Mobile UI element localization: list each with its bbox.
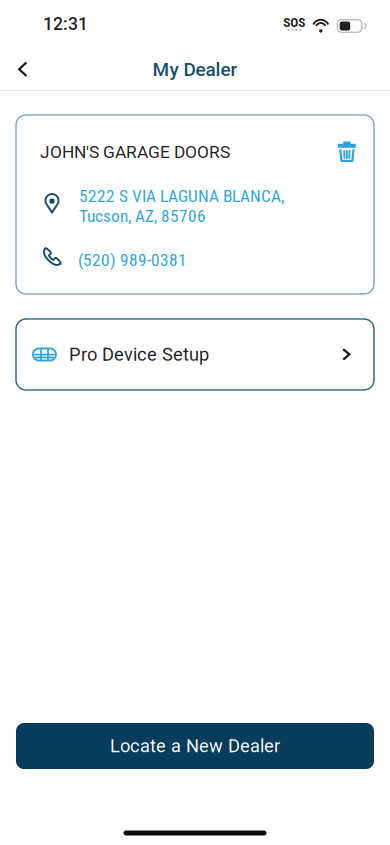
staticText: Pro Device Setup — [69, 344, 209, 365]
button[interactable]: Back — [0, 48, 46, 91]
staticText: Tucson, AZ, 85706 — [79, 206, 206, 226]
staticText: 12:31 — [43, 14, 88, 34]
button[interactable]: Locate a New Dealer — [16, 723, 374, 769]
staticText: JOHN'S GARAGE DOORS — [40, 142, 230, 162]
button[interactable]: (520) 989-0381 — [40, 249, 356, 271]
staticText: (520) 989-0381 — [78, 250, 187, 270]
staticText: 5222 S VIA LAGUNA BLANCA, — [79, 186, 284, 206]
button[interactable]: Delete dealer — [338, 141, 356, 162]
button[interactable]: Pro Device Setup — [16, 319, 374, 390]
staticText: Locate a New Dealer — [110, 735, 280, 757]
button[interactable]: 5222 S VIA LAGUNA BLANCA, — [40, 186, 356, 228]
staticText: SOS — [283, 15, 305, 30]
staticText: My Dealer — [152, 58, 237, 81]
